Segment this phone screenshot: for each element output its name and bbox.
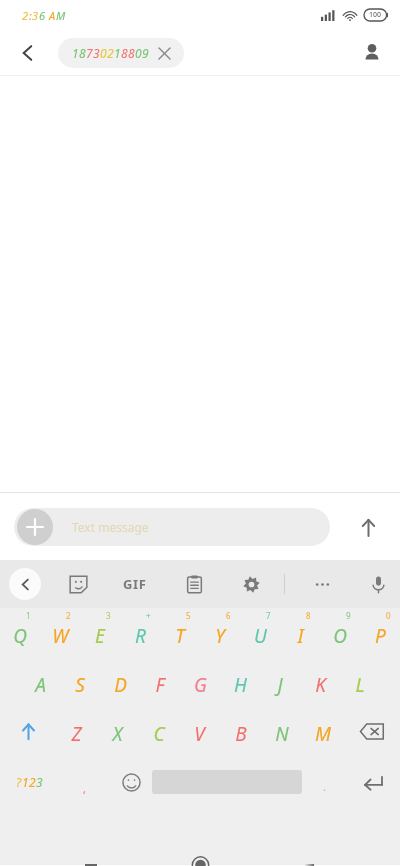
button[interactable]: F [140, 658, 180, 706]
button[interactable]: W [40, 608, 80, 658]
button[interactable]: N [261, 706, 302, 756]
staticText: M [56, 8, 66, 23]
button[interactable]: Stickers [59, 565, 97, 603]
staticText: J [277, 672, 283, 698]
staticText: Text message [72, 519, 149, 535]
staticText: W [52, 623, 69, 649]
staticText: 2 [22, 8, 29, 23]
button[interactable]: Collapse toolbar [9, 568, 41, 600]
button[interactable]: GIF [116, 565, 154, 603]
button[interactable]: X [97, 706, 138, 756]
button[interactable]: H [220, 658, 260, 706]
button[interactable]: M [302, 706, 343, 756]
staticText: R [135, 623, 146, 649]
staticText: Q [13, 623, 27, 649]
staticText: B [235, 721, 247, 747]
staticText: 7 [86, 45, 93, 61]
button[interactable]: More options [303, 565, 341, 603]
button[interactable]: G [180, 658, 220, 706]
button[interactable]: K [300, 658, 340, 706]
staticText: C [153, 721, 165, 747]
staticText: 8 [79, 45, 86, 61]
staticText: F [155, 672, 165, 698]
staticText: : [29, 8, 32, 23]
button[interactable]: Back [285, 864, 333, 866]
button[interactable]: A [20, 658, 60, 706]
staticText: 0 [386, 610, 391, 621]
button[interactable]: J [260, 658, 300, 706]
button[interactable]: Q [0, 608, 40, 658]
button[interactable]: Recent apps [67, 864, 115, 866]
staticText: 8 [128, 45, 135, 61]
button[interactable]: Emoji [110, 756, 152, 808]
staticText: A [35, 672, 46, 698]
staticText: ? [16, 774, 22, 790]
staticText: L [355, 672, 365, 698]
staticText: 7 [266, 610, 271, 621]
staticText: 1 [114, 45, 121, 61]
button[interactable]: ? [0, 756, 58, 808]
button[interactable]: Text message [14, 508, 330, 546]
button[interactable]: V [179, 706, 220, 756]
button[interactable]: P [360, 608, 400, 658]
staticText: 100 [369, 10, 382, 20]
button[interactable]: Clipboard [175, 565, 213, 603]
button[interactable]: Y [200, 608, 240, 658]
staticText: . [323, 779, 326, 794]
staticText: 6 [226, 610, 231, 621]
staticText: 6 [39, 8, 46, 23]
staticText: 3 [106, 610, 111, 621]
button[interactable]: B [220, 706, 261, 756]
staticText: 3 [93, 45, 100, 61]
button[interactable]: O [320, 608, 360, 658]
staticText: T [175, 623, 185, 649]
button[interactable]: L [340, 658, 380, 706]
staticText: P [375, 623, 386, 649]
button[interactable]: D [100, 658, 140, 706]
button[interactable]: Space [152, 756, 302, 808]
staticText: A [49, 8, 56, 23]
staticText: I [297, 623, 304, 649]
button[interactable]: R [120, 608, 160, 658]
button[interactable]: Attach [17, 509, 53, 545]
button[interactable]: Home [176, 864, 224, 866]
button[interactable]: Back [8, 33, 48, 73]
staticText: 1 [26, 610, 31, 621]
staticText: 9 [346, 610, 351, 621]
button[interactable]: Send [348, 507, 388, 547]
staticText: 8 [306, 610, 311, 621]
staticText: GIF [123, 575, 147, 593]
button[interactable]: 1 [58, 38, 184, 68]
button[interactable]: Voice input [359, 565, 397, 603]
staticText: 1 [22, 774, 29, 790]
button[interactable]: T [160, 608, 200, 658]
button[interactable]: S [60, 658, 100, 706]
button[interactable]: E [80, 608, 120, 658]
button[interactable]: Enter [346, 756, 400, 808]
staticText: , [83, 781, 86, 796]
button[interactable]: Backspace [343, 706, 400, 756]
button[interactable]: Shift [0, 706, 56, 756]
staticText [46, 8, 49, 23]
staticText: Y [215, 623, 225, 649]
staticText: 3 [36, 774, 43, 790]
button[interactable]: I [280, 608, 320, 658]
staticText: S [75, 672, 85, 698]
staticText: N [275, 721, 289, 747]
staticText: 5 [186, 610, 191, 621]
staticText: E [95, 623, 105, 649]
staticText: K [315, 672, 326, 698]
button[interactable]: C [138, 706, 179, 756]
staticText: 0 [135, 45, 142, 61]
button[interactable]: , [58, 756, 110, 808]
button[interactable]: Z [56, 706, 97, 756]
staticText: X [112, 721, 123, 747]
button[interactable]: Contact details [352, 33, 392, 73]
button[interactable]: Settings [232, 565, 270, 603]
staticText: Z [71, 721, 82, 747]
staticText: O [333, 623, 347, 649]
button[interactable]: U [240, 608, 280, 658]
staticText: H [234, 672, 247, 698]
staticText: D [114, 672, 127, 698]
